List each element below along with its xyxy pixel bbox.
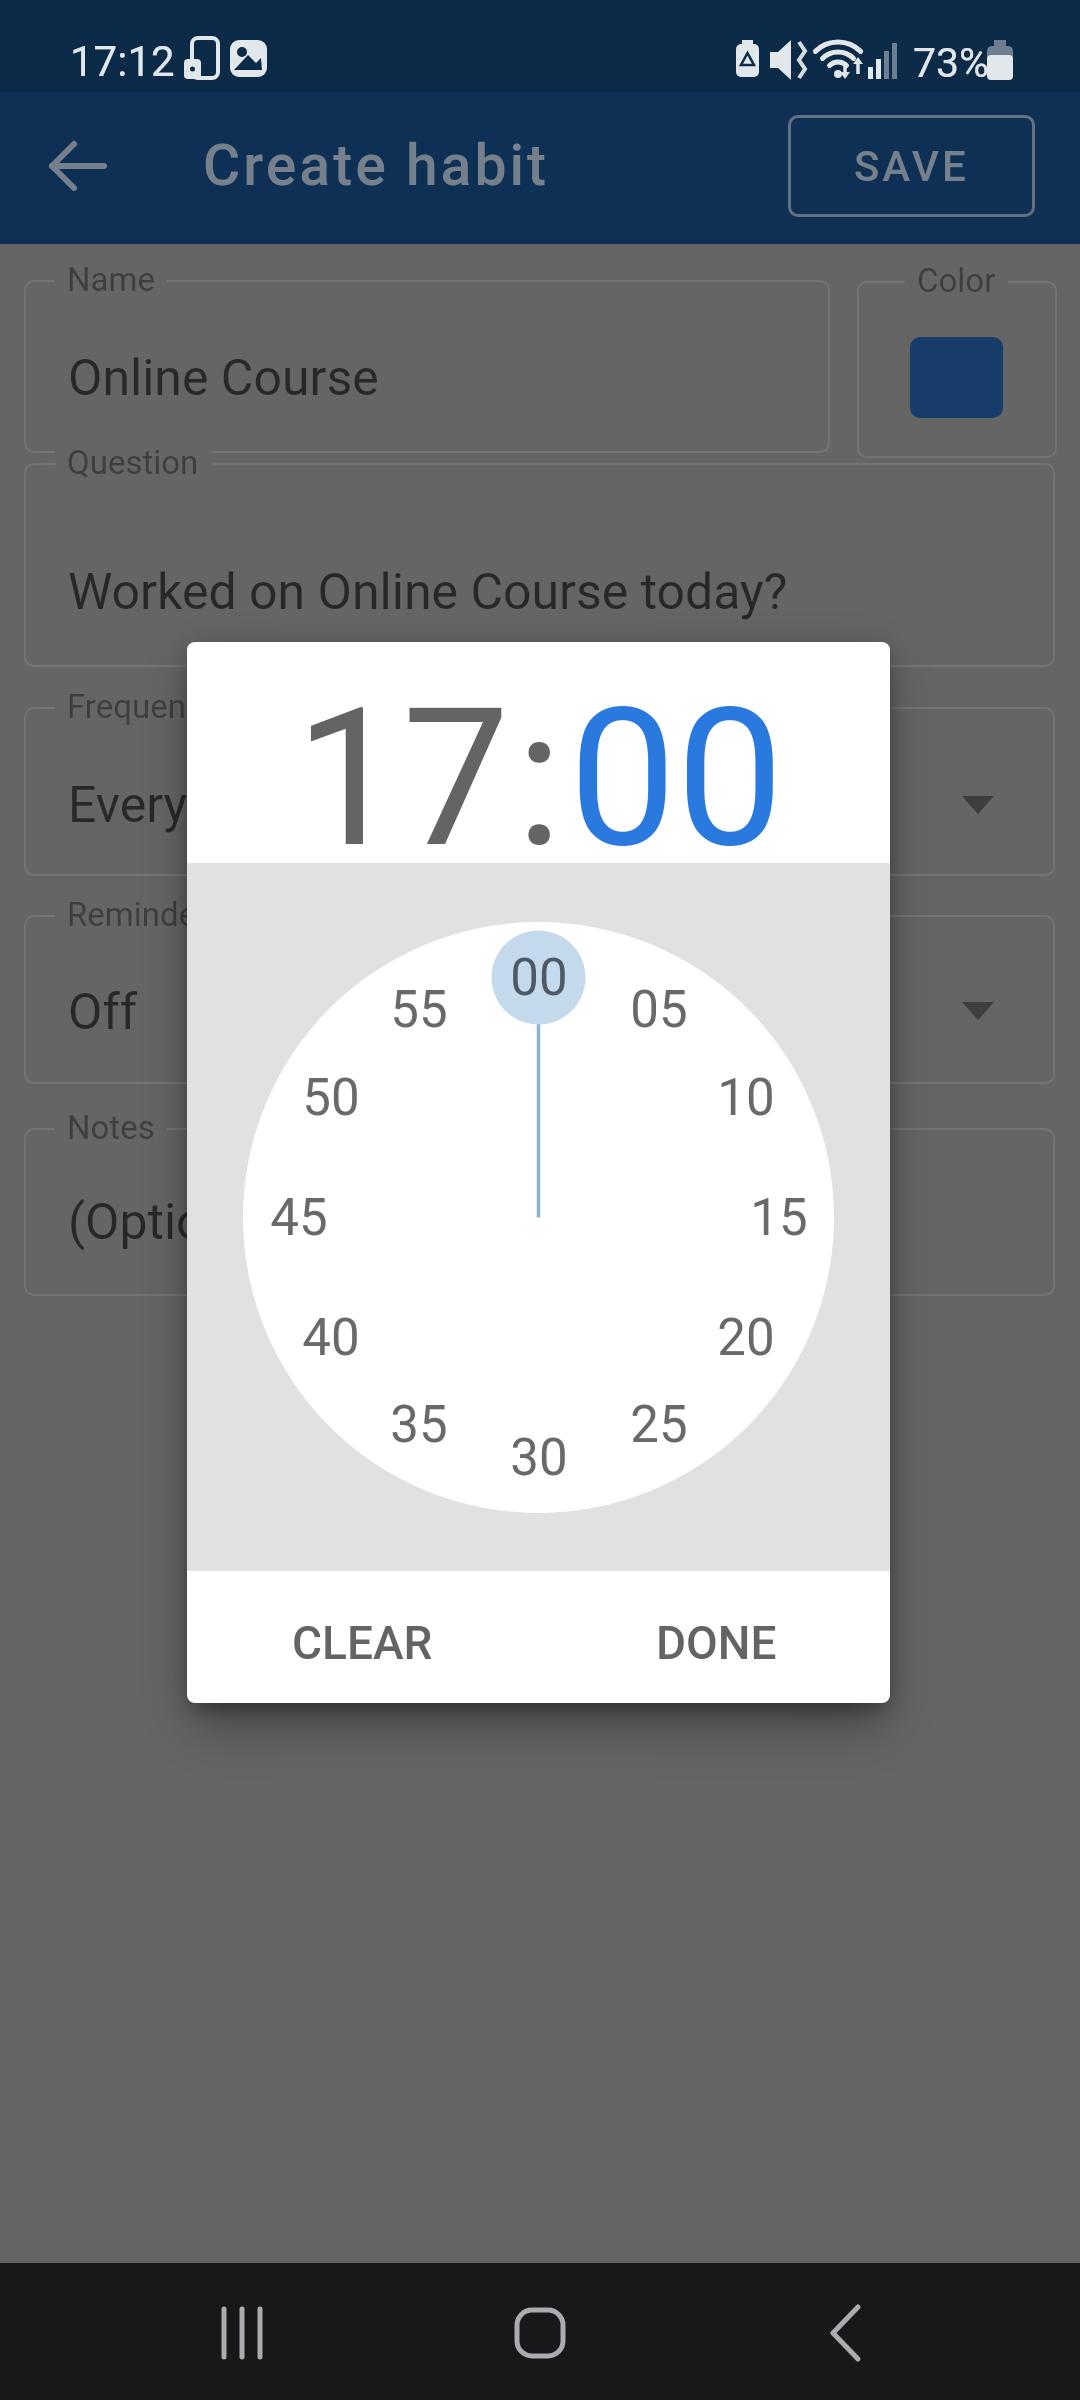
staticText: Question	[67, 443, 199, 482]
staticText: 35	[390, 1395, 448, 1455]
button[interactable]	[795, 2283, 895, 2383]
staticText: SAVE	[854, 142, 969, 191]
button[interactable]	[24, 707, 1055, 876]
staticText: Create habit	[203, 132, 550, 199]
staticText: 40	[302, 1308, 360, 1368]
staticText: :	[516, 667, 563, 888]
staticText: Online Course	[68, 349, 379, 408]
button[interactable]	[24, 915, 1055, 1084]
staticText: (Optional)	[68, 1193, 289, 1252]
staticText: Notes	[67, 1108, 155, 1147]
staticText: 50	[302, 1068, 360, 1128]
button[interactable]	[490, 2283, 590, 2383]
button[interactable]: SAVE	[788, 115, 1035, 217]
staticText: Color	[917, 261, 996, 300]
staticText: 25	[630, 1395, 688, 1455]
staticText: 20	[717, 1308, 775, 1368]
staticText: CLEAR	[292, 1616, 433, 1670]
staticText: 00	[510, 948, 568, 1008]
staticText: Every day	[68, 776, 279, 835]
staticText: 73%	[913, 39, 990, 87]
staticText: DONE	[656, 1616, 777, 1670]
button[interactable]	[857, 281, 1057, 458]
staticText: 10	[717, 1068, 775, 1128]
staticText: 17:12	[70, 37, 175, 86]
staticText: 17	[295, 667, 510, 888]
button[interactable]	[24, 1128, 1055, 1296]
staticText: 30	[510, 1428, 568, 1488]
staticText: Off	[68, 983, 138, 1042]
button[interactable]: CLEAR	[272, 1597, 452, 1689]
staticText: Reminder	[67, 895, 208, 934]
button[interactable]	[24, 280, 830, 453]
staticText: Name	[67, 260, 155, 299]
staticText: 05	[630, 980, 688, 1040]
staticText: 55	[390, 980, 448, 1040]
staticText: 15	[750, 1188, 808, 1248]
staticText: Frequency	[67, 687, 219, 726]
button[interactable]	[910, 337, 1003, 418]
button[interactable]	[24, 463, 1055, 667]
button[interactable]	[192, 2283, 292, 2383]
staticText: 45	[270, 1188, 328, 1248]
button[interactable]: DONE	[626, 1597, 806, 1689]
staticText: Worked on Online Course today?	[68, 563, 788, 622]
staticText: 00	[569, 667, 784, 888]
button[interactable]	[28, 116, 128, 216]
